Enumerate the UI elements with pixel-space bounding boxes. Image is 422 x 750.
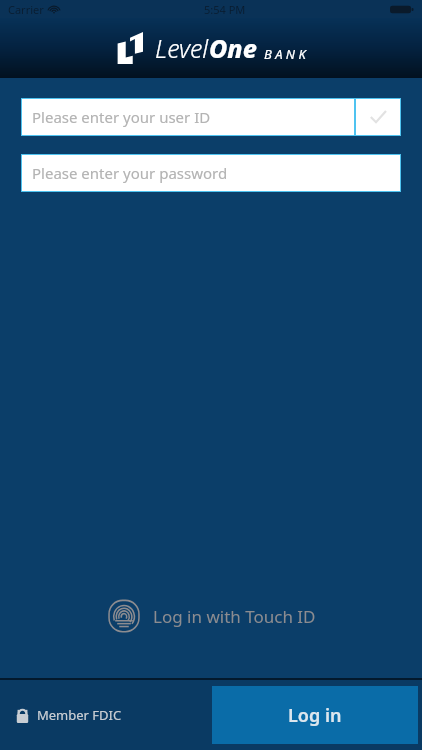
staticText: 5:54 PM bbox=[204, 2, 246, 17]
staticText: Member FDIC bbox=[37, 706, 122, 724]
staticText: Carrier bbox=[8, 2, 44, 17]
staticText: One bbox=[209, 31, 257, 65]
button[interactable]: Log in with Touch ID bbox=[0, 594, 422, 638]
button[interactable]: Please enter your user ID bbox=[21, 98, 355, 136]
staticText: Please enter your user ID bbox=[32, 107, 211, 127]
button[interactable]: Please enter your password bbox=[21, 154, 401, 192]
staticText: B A N K bbox=[264, 45, 306, 63]
button[interactable]: Log in bbox=[212, 686, 418, 744]
staticText: Log in bbox=[288, 703, 342, 728]
staticText: Log in with Touch ID bbox=[153, 605, 316, 628]
button[interactable]: Member FDIC bbox=[16, 706, 122, 724]
staticText: Please enter your password bbox=[32, 163, 228, 183]
staticText: Level bbox=[155, 31, 209, 65]
button[interactable]: Remember user ID bbox=[355, 98, 401, 136]
